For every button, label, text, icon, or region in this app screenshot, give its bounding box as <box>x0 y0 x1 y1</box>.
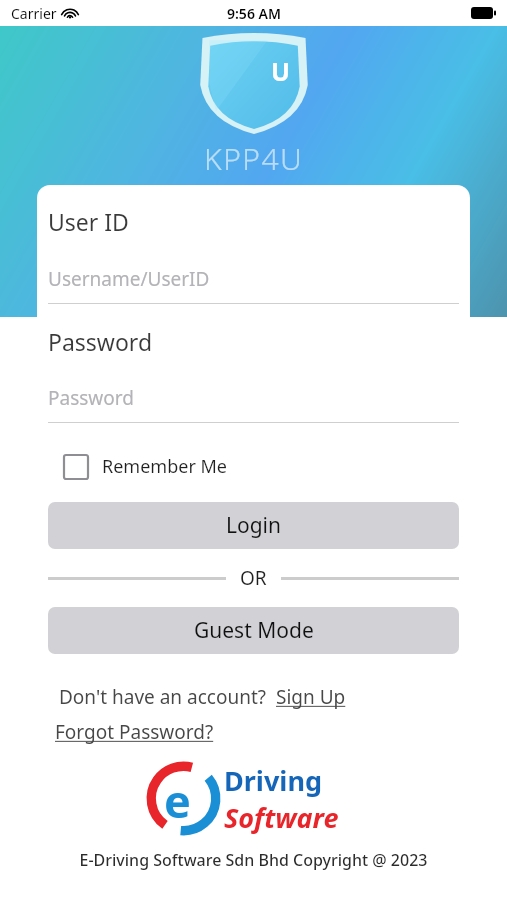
staticText: Username/UserID <box>48 266 210 292</box>
staticText: KPP4U <box>204 138 304 179</box>
staticText: 9:56 AM <box>227 4 281 23</box>
staticText: Password <box>48 385 134 411</box>
staticText: Driving <box>224 762 323 799</box>
other: E-Driving Software <box>146 761 361 836</box>
staticText: E-Driving Software Sdn Bhd Copyright @ 2… <box>48 849 459 871</box>
staticText: e <box>164 770 191 831</box>
staticText: User ID <box>48 206 129 237</box>
other: KPP4U logo <box>198 32 310 134</box>
button[interactable]: Login <box>48 502 459 549</box>
staticText: U <box>271 54 290 88</box>
staticText: Carrier <box>11 4 57 23</box>
button[interactable]: Forgot Password? <box>55 719 214 745</box>
staticText: Password <box>48 326 153 357</box>
button[interactable]: Username/UserID <box>48 266 459 304</box>
staticText: Forgot Password? <box>55 719 214 745</box>
staticText: Sign Up <box>276 684 346 710</box>
staticText: Software <box>224 799 339 836</box>
staticText: OR <box>240 565 267 591</box>
button[interactable]: Sign Up <box>276 684 346 710</box>
button[interactable]: Password <box>48 385 459 423</box>
button[interactable]: Guest Mode <box>48 607 459 654</box>
staticText: Login <box>226 511 282 540</box>
staticText: Don't have an account? <box>59 684 267 710</box>
staticText: Guest Mode <box>194 616 314 645</box>
button[interactable]: Remember Me <box>64 454 227 479</box>
staticText: Remember Me <box>102 454 227 479</box>
